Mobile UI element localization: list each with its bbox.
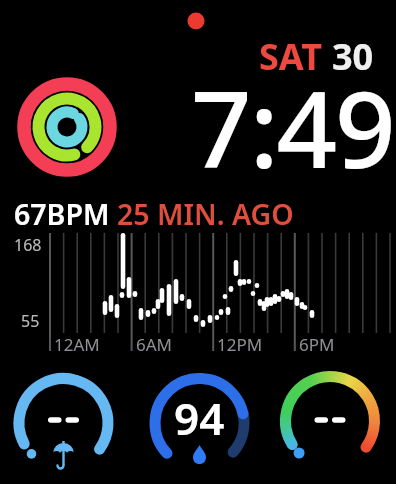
staticText: 25 MIN. AGO — [117, 195, 294, 234]
staticText: 67BPM — [14, 195, 117, 234]
staticText: SAT — [259, 32, 332, 81]
button[interactable] — [279, 370, 381, 472]
staticText: 30 — [332, 32, 374, 81]
button[interactable] — [148, 372, 250, 474]
staticText: 6AM — [136, 333, 173, 356]
staticText: 12PM — [217, 333, 263, 356]
staticText: 12AM — [54, 333, 100, 356]
staticText: 6PM — [299, 333, 335, 356]
button[interactable] — [12, 372, 114, 474]
staticText: 94 — [174, 388, 225, 436]
button[interactable] — [16, 76, 118, 178]
staticText: 7:49 — [191, 55, 394, 199]
button[interactable] — [0, 192, 396, 354]
staticText: 55 — [21, 310, 40, 332]
staticText: 168 — [14, 234, 42, 256]
